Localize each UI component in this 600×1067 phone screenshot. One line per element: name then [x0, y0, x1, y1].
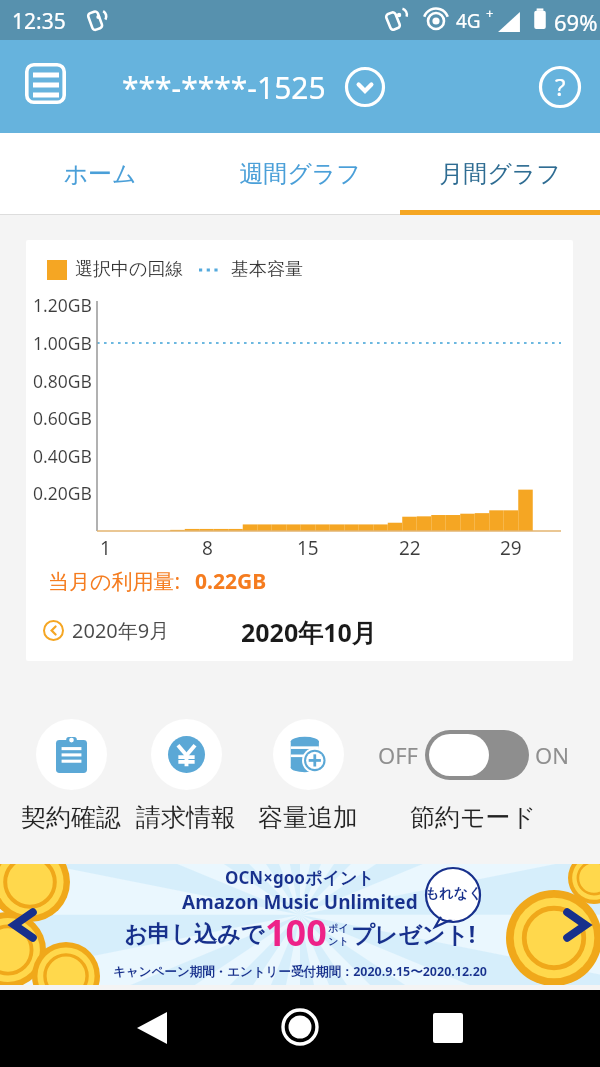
- button[interactable]: Select line: [341, 63, 389, 111]
- staticText: 週間グラフ: [239, 159, 361, 189]
- staticText: 8: [202, 535, 213, 561]
- staticText: 請求情報: [136, 802, 236, 833]
- staticText: 1.20GB: [33, 293, 92, 317]
- staticText: 0.22GB: [195, 567, 267, 596]
- staticText: ?: [555, 70, 566, 103]
- staticText: Amazon Music Unlimited: [182, 889, 418, 915]
- staticText: ON: [535, 740, 569, 770]
- staticText: プレゼント!: [351, 918, 476, 949]
- staticText: 0.40GB: [33, 444, 92, 468]
- staticText: 69%: [554, 7, 598, 37]
- staticText: 月間グラフ: [439, 159, 561, 189]
- staticText: 0.80GB: [33, 369, 92, 393]
- staticText: 選択中の回線: [75, 258, 184, 281]
- staticText: 1: [100, 535, 111, 561]
- button[interactable]: 週間グラフ: [200, 133, 400, 215]
- staticText: ***-****-1525: [122, 67, 326, 108]
- button[interactable]: 月間グラフ: [400, 133, 600, 215]
- staticText: ント: [328, 935, 349, 948]
- staticText: 2020年10月: [241, 615, 377, 649]
- button[interactable]: Help: [536, 63, 584, 111]
- button[interactable]: OFF: [373, 719, 573, 833]
- staticText: 12:35: [12, 7, 66, 36]
- button[interactable]: 契約確認: [11, 719, 131, 833]
- staticText: 0.20GB: [33, 481, 92, 505]
- staticText: OFF: [378, 740, 419, 770]
- staticText: 29: [500, 535, 522, 561]
- button[interactable]: Menu: [15, 53, 76, 114]
- button[interactable]: 2020年9月: [43, 612, 170, 648]
- staticText: 容量追加: [258, 802, 358, 833]
- button[interactable]: 請求情報: [126, 719, 246, 833]
- staticText: 2020年9月: [72, 617, 170, 644]
- button[interactable]: 容量追加: [248, 719, 368, 833]
- button[interactable]: ホーム: [0, 133, 200, 215]
- button[interactable]: OCN×gooポイント: [0, 864, 600, 985]
- staticText: 契約確認: [21, 802, 121, 833]
- button[interactable]: Back: [127, 1007, 177, 1049]
- staticText: キャンペーン期間・エントリー受付期間：2020.9.15〜2020.12.20: [113, 963, 487, 980]
- staticText: 15: [297, 535, 319, 561]
- button[interactable]: Recents: [423, 1007, 473, 1049]
- staticText: ホーム: [63, 159, 137, 189]
- staticText: +: [486, 4, 494, 22]
- staticText: もれなく: [425, 885, 483, 903]
- button[interactable]: Home: [276, 1003, 324, 1051]
- staticText: 1.00GB: [33, 331, 92, 355]
- staticText: 0.60GB: [33, 406, 92, 430]
- staticText: 4G: [456, 8, 481, 34]
- staticText: お申し込みで: [124, 920, 265, 949]
- staticText: OCN×gooポイント: [225, 866, 375, 889]
- staticText: 当月の利用量:: [48, 567, 181, 596]
- staticText: 節約モード: [410, 802, 537, 833]
- staticText: 基本容量: [231, 258, 303, 281]
- staticText: ポイ: [328, 922, 349, 935]
- staticText: 100: [265, 908, 327, 954]
- staticText: 22: [399, 535, 421, 561]
